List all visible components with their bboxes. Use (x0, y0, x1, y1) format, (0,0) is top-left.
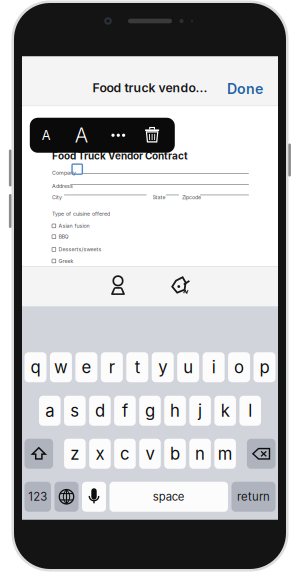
staticText: BBQ (58, 233, 68, 240)
staticText: v (145, 444, 154, 464)
staticText: space (153, 490, 185, 504)
staticText: e (81, 357, 91, 377)
button[interactable]: y (152, 352, 174, 382)
button[interactable]: q (24, 352, 46, 382)
staticText: s (70, 401, 79, 421)
button[interactable]: Add person (101, 271, 135, 301)
button[interactable]: Add signature (165, 271, 199, 301)
staticText: w (54, 357, 68, 377)
button[interactable]: Dictate (82, 482, 106, 512)
button[interactable]: w (50, 352, 72, 382)
staticText: Desserts/sweets (58, 246, 101, 253)
staticText: o (234, 357, 244, 377)
button[interactable]: b (164, 439, 186, 469)
button[interactable]: a (39, 396, 61, 426)
staticText: Asian fusion (58, 223, 89, 229)
staticText: t (135, 357, 140, 377)
staticText: A (75, 123, 88, 147)
button[interactable]: m (214, 439, 236, 469)
button[interactable]: Shift (24, 439, 53, 469)
staticText: c (120, 444, 130, 464)
button[interactable]: z (64, 439, 86, 469)
button[interactable]: Delete (137, 118, 175, 153)
staticText: h (170, 401, 180, 421)
staticText: j (198, 401, 202, 421)
button[interactable]: x (89, 439, 111, 469)
button[interactable]: Delete (247, 439, 275, 469)
button[interactable]: c (114, 439, 136, 469)
staticText: a (45, 401, 54, 421)
staticText: Greek (58, 258, 73, 264)
button[interactable]: Larger text (63, 118, 100, 153)
button[interactable]: 123 (24, 482, 51, 512)
staticText: Food Truck Vendor Contract (52, 150, 188, 162)
button[interactable]: u (177, 352, 199, 382)
button[interactable]: Done (219, 73, 271, 104)
staticText: l (248, 401, 252, 421)
button[interactable]: r (101, 352, 123, 382)
staticText: g (145, 401, 155, 421)
button[interactable]: return (231, 482, 275, 512)
staticText: City (52, 194, 62, 201)
staticText: n (195, 444, 205, 464)
button[interactable]: f (114, 396, 136, 426)
staticText: Company (52, 170, 76, 176)
button[interactable]: i (203, 352, 225, 382)
staticText: return (237, 490, 270, 504)
staticText: f (122, 401, 128, 421)
button[interactable]: j (189, 396, 211, 426)
button[interactable]: Smaller text (30, 118, 63, 153)
staticText: x (95, 444, 104, 464)
button[interactable]: h (164, 396, 186, 426)
staticText: k (221, 401, 230, 421)
button[interactable]: More options (100, 118, 137, 153)
button[interactable]: e (75, 352, 97, 382)
staticText: d (95, 401, 105, 421)
button[interactable]: space (109, 482, 228, 512)
staticText: q (30, 357, 40, 377)
staticText: b (170, 444, 180, 464)
button[interactable]: p (254, 352, 276, 382)
staticText: Type of cuisine offered (52, 211, 110, 217)
button[interactable]: s (64, 396, 86, 426)
button[interactable]: d (89, 396, 111, 426)
button[interactable]: Switch keyboard (54, 482, 78, 512)
staticText: i (212, 357, 216, 377)
button[interactable]: k (214, 396, 236, 426)
button[interactable]: v (139, 439, 161, 469)
button[interactable]: g (139, 396, 161, 426)
button[interactable]: n (189, 439, 211, 469)
staticText: Zipcode (182, 194, 201, 201)
staticText: r (109, 357, 115, 377)
staticText: z (70, 444, 79, 464)
staticText: Done (227, 80, 263, 97)
button[interactable]: t (126, 352, 148, 382)
staticText: m (218, 444, 233, 464)
staticText: Address (52, 183, 73, 189)
staticText: 123 (28, 490, 47, 504)
staticText: A (42, 127, 51, 143)
staticText: State (152, 194, 165, 201)
staticText: p (259, 357, 269, 377)
staticText: Food truck vendo... (92, 80, 207, 95)
button[interactable]: o (228, 352, 250, 382)
button[interactable]: l (239, 396, 261, 426)
staticText: y (158, 357, 167, 377)
staticText: u (183, 357, 193, 377)
